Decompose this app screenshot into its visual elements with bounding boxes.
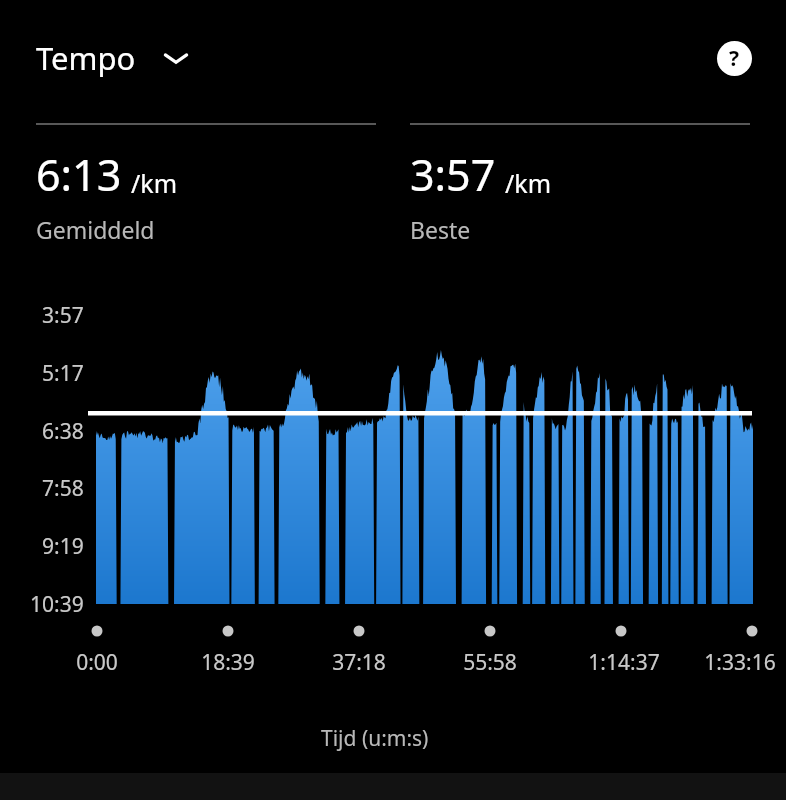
staticText: 3:57 — [42, 301, 84, 330]
staticText: /km — [505, 166, 552, 200]
staticText: 6:38 — [42, 417, 84, 446]
staticText: Tempo — [36, 37, 136, 79]
staticText: 55:58 — [463, 648, 517, 677]
staticText: 10:39 — [30, 590, 84, 619]
staticText: Tijd (u:m:s) — [321, 724, 429, 753]
staticText: 7:58 — [42, 474, 84, 503]
staticText: /km — [131, 166, 178, 200]
staticText: 3:57 — [410, 145, 496, 204]
staticText: 9:19 — [42, 532, 84, 561]
staticText: 5:17 — [42, 359, 84, 388]
button[interactable]: Tempo — [30, 33, 196, 83]
staticText: ? — [729, 44, 740, 73]
staticText: 1:33:16 — [704, 648, 776, 677]
staticText: Gemiddeld — [36, 214, 155, 245]
staticText: 0:00 — [76, 648, 118, 677]
staticText: 1:14:37 — [588, 648, 660, 677]
staticText: Beste — [410, 214, 471, 245]
staticText: 6:13 — [36, 145, 122, 204]
button[interactable]: Help — [714, 38, 754, 78]
staticText: 37:18 — [332, 648, 386, 677]
staticText: 18:39 — [201, 648, 255, 677]
